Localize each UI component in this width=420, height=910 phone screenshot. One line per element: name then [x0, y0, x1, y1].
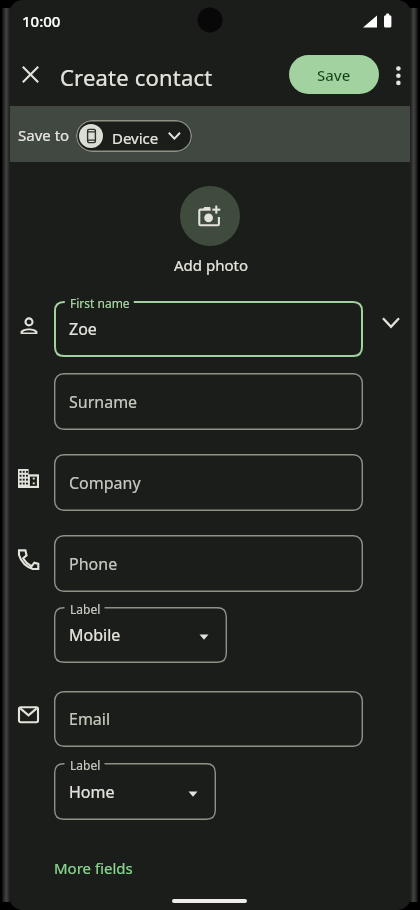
staticText: More fields: [54, 858, 133, 878]
staticText: Phone: [69, 553, 118, 575]
staticText: Device: [112, 128, 159, 148]
button[interactable]: Add photo: [180, 186, 240, 246]
staticText: 10:00: [22, 11, 61, 31]
staticText: Surname: [69, 391, 138, 413]
button[interactable]: Email: [54, 691, 363, 747]
button[interactable]: More options: [377, 54, 411, 95]
button[interactable]: Phone: [54, 535, 363, 592]
staticText: Company: [69, 472, 141, 494]
staticText: First name: [70, 295, 130, 311]
button[interactable]: More fields: [42, 850, 145, 886]
staticText: Email: [69, 708, 111, 730]
button[interactable]: Company: [54, 454, 363, 511]
button[interactable]: Device: [76, 120, 192, 152]
button[interactable]: Mobile: [54, 607, 227, 663]
button[interactable]: Save: [289, 55, 379, 94]
staticText: Home: [69, 781, 115, 803]
staticText: Label: [70, 757, 101, 773]
button[interactable]: Close: [9, 53, 51, 95]
staticText: Add photo: [174, 255, 248, 275]
button[interactable]: Expand name fields: [370, 302, 411, 344]
staticText: Save to: [18, 125, 70, 145]
staticText: Create contact: [60, 62, 213, 92]
staticText: Save: [317, 65, 351, 85]
button[interactable]: Home: [54, 763, 216, 820]
staticText: Zoe: [69, 318, 97, 340]
button[interactable]: Zoe: [54, 301, 363, 357]
staticText: Label: [70, 601, 101, 617]
staticText: Mobile: [69, 624, 121, 646]
button[interactable]: Surname: [54, 373, 363, 430]
